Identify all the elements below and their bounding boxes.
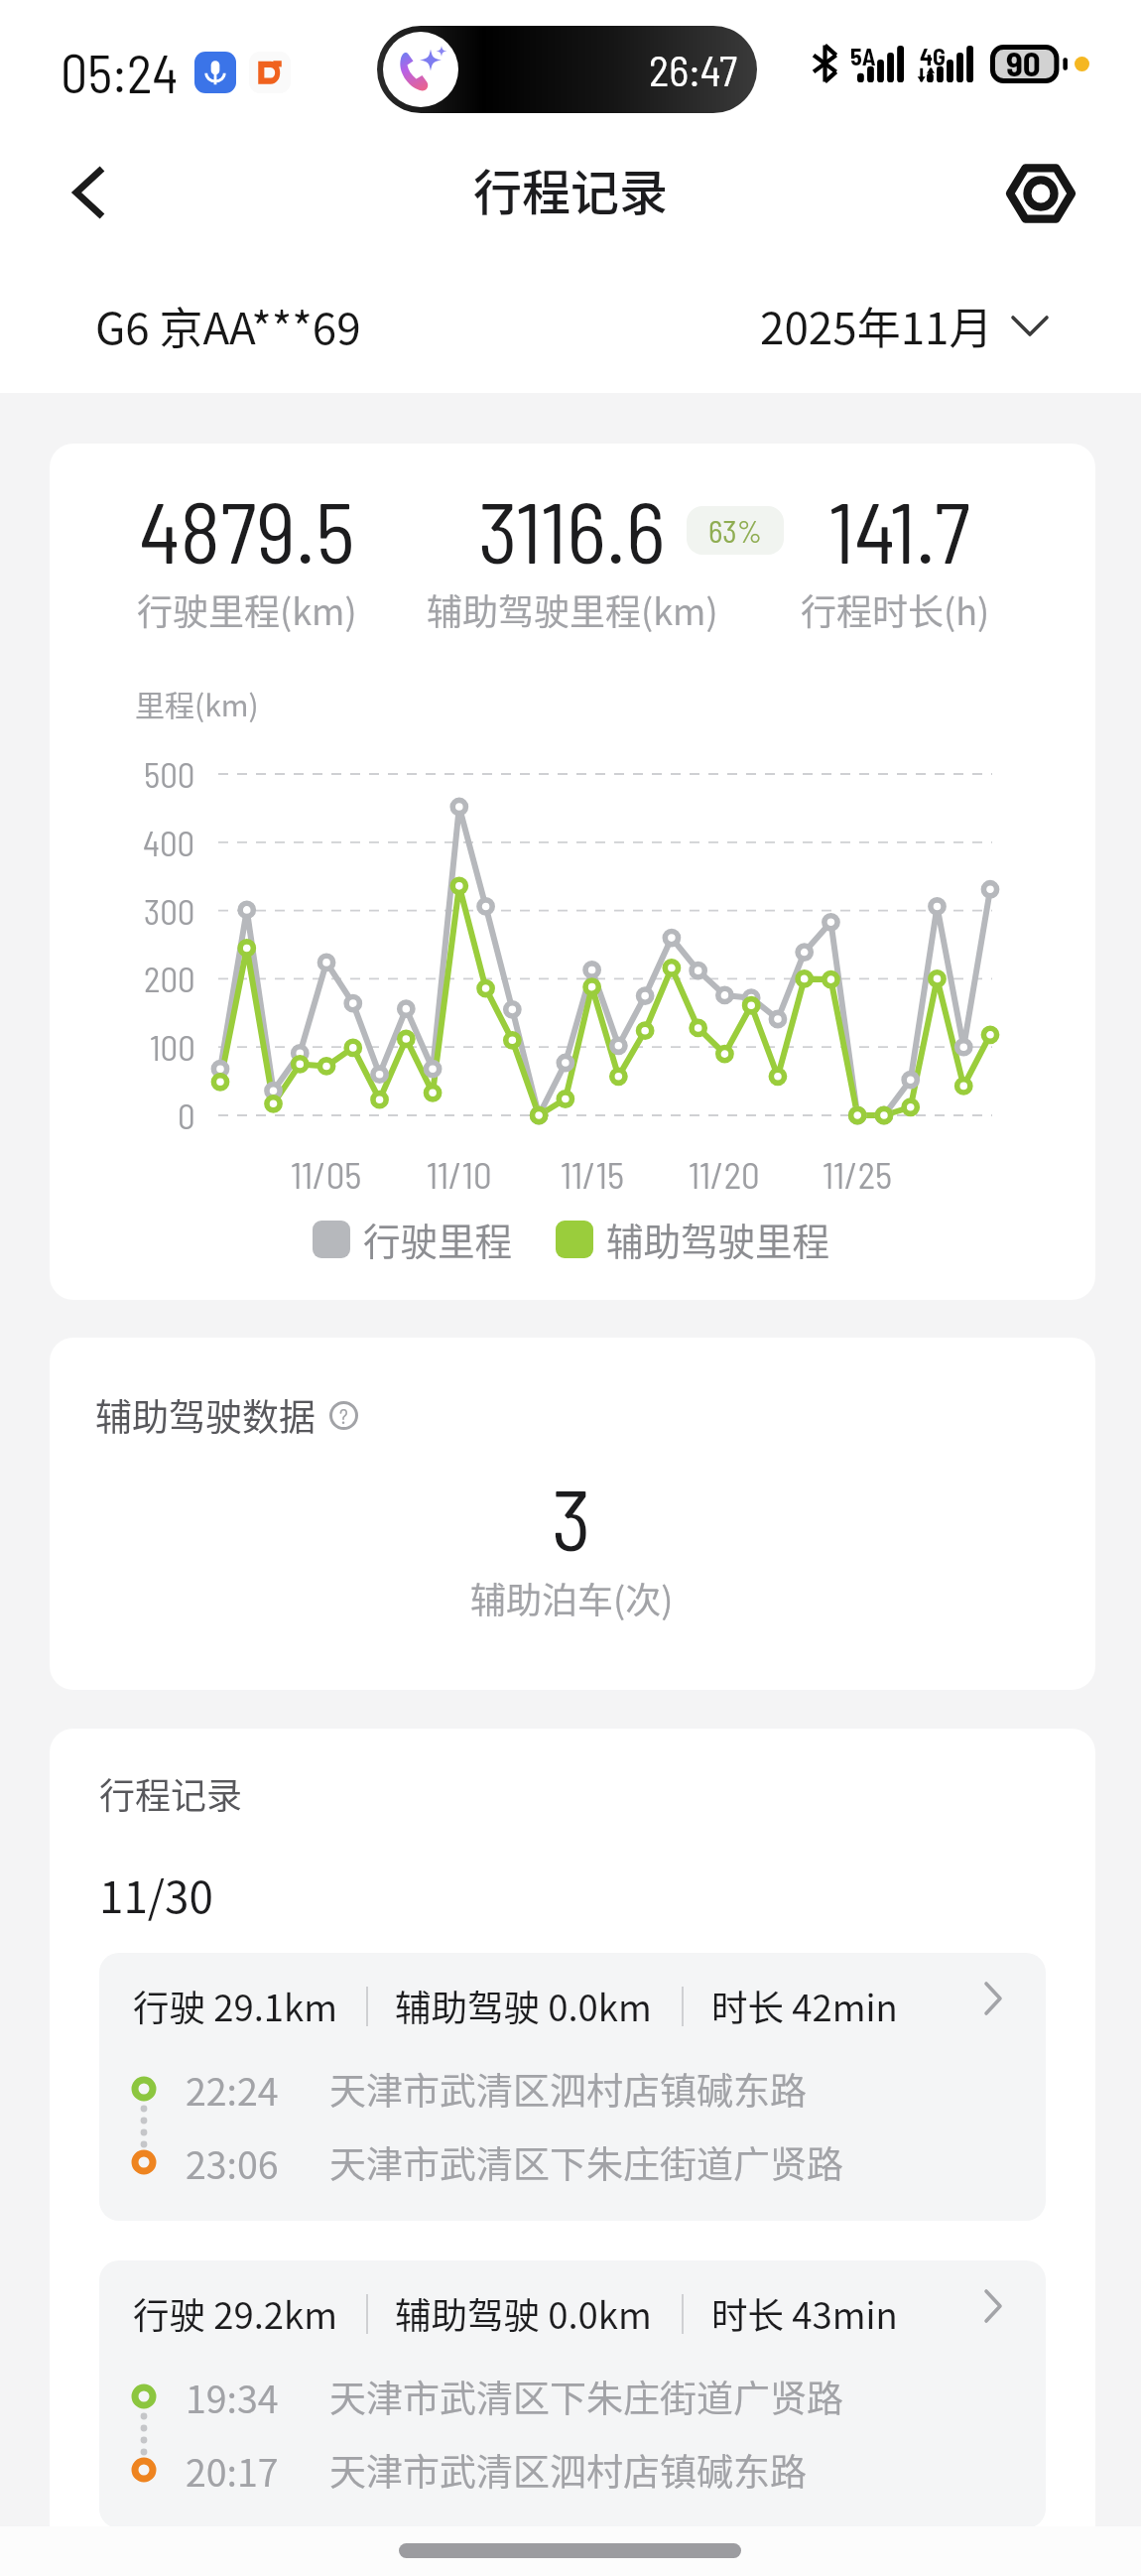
staticText: 300 (144, 890, 195, 932)
staticText: ? (339, 1403, 348, 1428)
staticText: 辅助驾驶里程(km) (427, 583, 718, 635)
staticText: 0 (178, 1095, 195, 1136)
staticText: 11/25 (823, 1152, 893, 1196)
staticText: 天津市武清区下朱庄街道广贤路 (329, 2370, 843, 2423)
button[interactable]: Settings (998, 151, 1083, 236)
staticText: 11/20 (689, 1152, 760, 1196)
staticText: 里程(km) (135, 682, 259, 724)
staticText: G6 京AA***69 (95, 294, 361, 357)
staticText: 辅助泊车(次) (470, 1572, 674, 1623)
button[interactable]: Back (47, 150, 132, 235)
button[interactable]: 行驶 29.2km (99, 2260, 1046, 2526)
staticText: 11/10 (427, 1152, 492, 1196)
staticText: 行驶 29.2km (133, 2287, 338, 2340)
staticText: 4G (920, 42, 947, 70)
staticText: 辅助驾驶里程 (606, 1212, 829, 1265)
staticText: 天津市武清区泗村店镇碱东路 (329, 2062, 807, 2116)
button[interactable]: 2025年11月 (754, 286, 1055, 365)
staticText: 05:24 (61, 40, 179, 104)
staticText: 400 (143, 822, 195, 863)
staticText: 4879.5 (139, 478, 355, 580)
staticText: 19:34 (186, 2370, 279, 2423)
staticText: 26:47 (649, 44, 738, 95)
staticText: 5A (850, 42, 876, 70)
staticText: 辅助驾驶 0.0km (395, 2287, 652, 2340)
staticText: 500 (144, 753, 195, 795)
staticText: 23:06 (186, 2135, 279, 2189)
button[interactable]: Help (326, 1398, 360, 1432)
staticText: 11/05 (291, 1152, 362, 1196)
staticText: 63% (708, 512, 762, 549)
staticText: 11/15 (561, 1152, 624, 1196)
staticText: 100 (150, 1026, 195, 1068)
staticText: 11/30 (99, 1863, 213, 1926)
staticText: 行程时长(h) (801, 583, 990, 635)
staticText: 天津市武清区下朱庄街道广贤路 (329, 2135, 843, 2189)
staticText: 141.7 (828, 478, 970, 580)
staticText: 2025年11月 (760, 294, 993, 357)
staticText: 辅助驾驶 0.0km (395, 1980, 652, 2032)
staticText: 时长 43min (711, 2287, 898, 2340)
staticText: 20:17 (186, 2443, 279, 2497)
staticText: 3 (552, 1466, 591, 1568)
staticText: 行程记录 (473, 154, 669, 224)
staticText: 时长 42min (711, 1980, 898, 2032)
staticText: 辅助驾驶数据 (95, 1388, 316, 1442)
staticText: 行驶里程 (363, 1212, 512, 1265)
staticText: 行驶里程(km) (137, 583, 357, 635)
staticText: 3116.6 (478, 478, 666, 580)
staticText: 行程记录 (99, 1767, 243, 1819)
staticText: 行驶 29.1km (133, 1980, 338, 2032)
staticText: 天津市武清区泗村店镇碱东路 (329, 2443, 807, 2497)
staticText: 22:24 (186, 2062, 279, 2116)
staticText: 200 (144, 958, 195, 999)
staticText: 90 (1006, 42, 1041, 83)
button[interactable]: 行驶 29.1km (99, 1953, 1046, 2221)
